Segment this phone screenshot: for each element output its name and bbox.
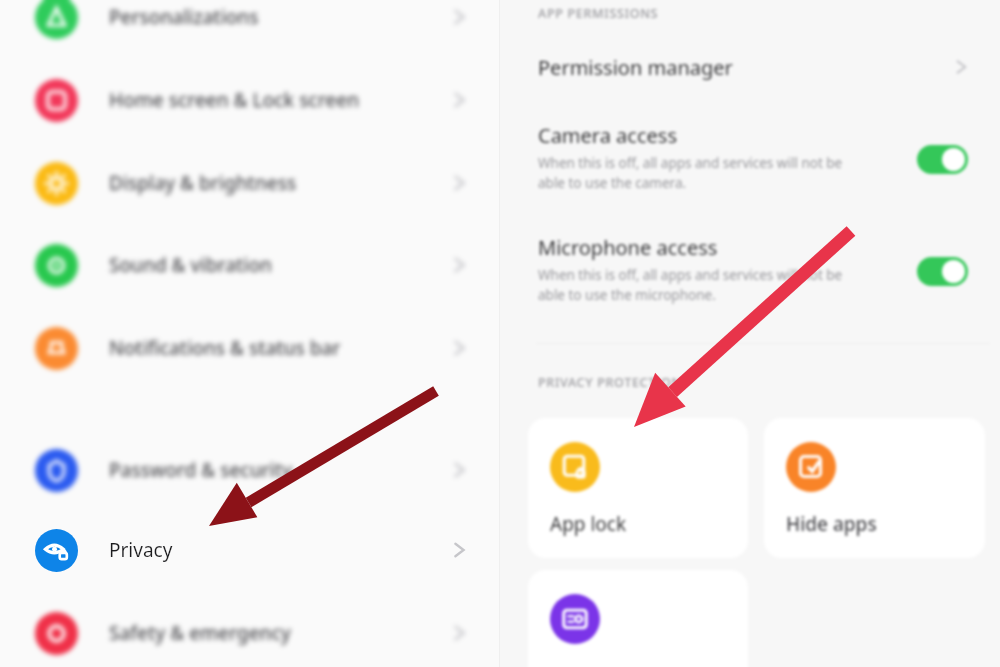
- button[interactable]: Microphone access: [917, 257, 968, 286]
- staticText: Personalizations: [109, 4, 259, 30]
- button[interactable]: Safety & emergency: [0, 597, 499, 667]
- button[interactable]: Permission manager: [500, 38, 1000, 96]
- staticText: APP PERMISSIONS: [538, 5, 659, 22]
- button[interactable]: Password & security: [0, 434, 499, 506]
- staticText: App lock: [550, 511, 627, 537]
- staticText: Hide apps: [786, 511, 877, 537]
- button[interactable]: Hide apps: [764, 418, 985, 558]
- staticText: able to use the camera.: [538, 174, 687, 192]
- staticText: When this is off, all apps and services …: [538, 154, 843, 172]
- button[interactable]: Private Safe: [528, 570, 748, 667]
- button[interactable]: Privacy: [0, 514, 499, 586]
- button[interactable]: Camera access: [917, 145, 968, 174]
- button[interactable]: Camera access: [500, 116, 1000, 220]
- button[interactable]: Personalizations: [0, 0, 499, 53]
- staticText: Permission manager: [538, 54, 733, 81]
- button[interactable]: Sound & vibration: [0, 229, 499, 301]
- staticText: Notifications & status bar: [109, 335, 341, 361]
- staticText: Sound & vibration: [109, 252, 272, 278]
- staticText: Home screen & Lock screen: [109, 87, 360, 113]
- staticText: Camera access: [538, 122, 677, 149]
- button[interactable]: Microphone access: [500, 228, 1000, 332]
- staticText: Microphone access: [538, 234, 718, 261]
- staticText: Safety & emergency: [109, 620, 291, 646]
- button[interactable]: App lock: [528, 418, 748, 558]
- staticText: able to use the microphone.: [538, 286, 716, 304]
- staticText: Display & brightness: [109, 170, 297, 196]
- staticText: When this is off, all apps and services …: [538, 266, 843, 284]
- staticText: Password & security: [109, 457, 293, 483]
- staticText: PRIVACY PROTECTION: [538, 374, 682, 391]
- button[interactable]: Home screen & Lock screen: [0, 64, 499, 136]
- staticText: Privacy: [109, 537, 173, 563]
- button[interactable]: Display & brightness: [0, 147, 499, 219]
- button[interactable]: Notifications & status bar: [0, 312, 499, 384]
